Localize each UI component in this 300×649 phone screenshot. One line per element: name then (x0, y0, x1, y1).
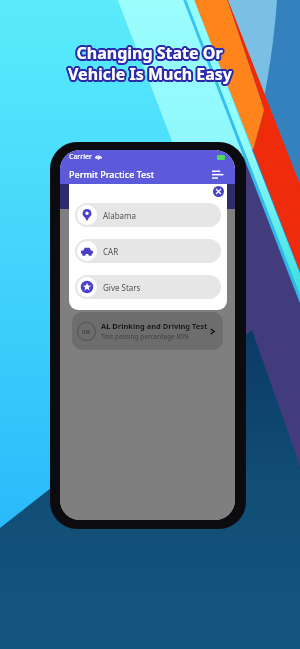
button[interactable]: Give Stars (75, 275, 221, 299)
button[interactable]: 0% (72, 264, 223, 302)
staticText: 0% (82, 328, 91, 336)
staticText: AL Drinking and Driving Test (101, 321, 208, 331)
staticText: AL Road Signs Test (101, 273, 171, 283)
staticText: Test passing percentage 80% (101, 284, 190, 293)
staticText: AL Alcohol and Drugs Test (101, 225, 198, 235)
staticText: 0% (82, 280, 91, 288)
staticText: Carrier (69, 152, 92, 162)
staticText: Test passing percentage 80% (101, 332, 190, 341)
button[interactable]: CAR (75, 239, 221, 263)
button[interactable]: Menu (210, 166, 226, 182)
button[interactable]: 0% (72, 312, 223, 350)
staticText: 0% (82, 232, 91, 240)
staticText: Permit Practice Test (69, 168, 155, 180)
staticText: Give Stars (103, 282, 141, 293)
staticText: Alabama (103, 210, 137, 221)
staticText: CAR (103, 246, 119, 257)
staticText: Test passing percentage 80% (101, 236, 190, 245)
button[interactable]: Alabama (75, 203, 221, 227)
button[interactable]: 0% (72, 216, 223, 254)
button[interactable]: Close (213, 186, 224, 197)
